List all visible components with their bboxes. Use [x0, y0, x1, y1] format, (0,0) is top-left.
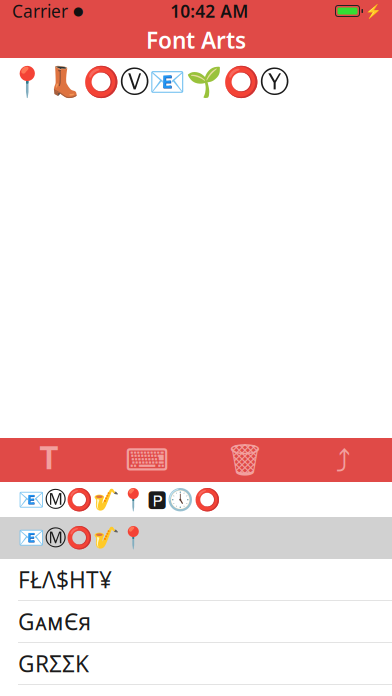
staticText: ⌨ [125, 443, 169, 477]
staticText: Carrier [12, 0, 68, 22]
staticText: GᴀᴍЄя [18, 606, 91, 636]
staticText: 📧Ⓜ⭕🎷📍🅿🕔⭕ [18, 486, 221, 513]
staticText: Font Arts [146, 25, 246, 55]
button[interactable]: Share [294, 438, 392, 482]
button[interactable]: 📧Ⓜ⭕🎷📍🅿🕔⭕ [0, 482, 392, 517]
button[interactable]: Clear [196, 438, 294, 482]
button[interactable]: FŁΛ$HТ¥ [0, 559, 392, 601]
staticText: 📍👢⭕Ⓥ📧🌱⭕Ⓨ [9, 64, 289, 100]
staticText: ⚡ [365, 3, 382, 19]
staticText: 📧Ⓜ⭕🎷📍 [18, 525, 147, 551]
button[interactable]: GRΣΣK [0, 643, 392, 685]
button[interactable]: Keyboard [98, 438, 196, 482]
staticText: FŁΛ$HТ¥ [18, 564, 112, 594]
button[interactable]: Fonts [0, 438, 98, 482]
staticText: 🗑 [225, 442, 264, 477]
button[interactable]: GᴀᴍЄя [0, 601, 392, 643]
staticText: 𝐓 [39, 445, 59, 475]
staticText: GRΣΣK [18, 648, 89, 678]
button[interactable]: 📧Ⓜ⭕🎷📍 [0, 517, 392, 559]
staticText: 10:42 AM [170, 0, 248, 22]
staticText: ⤴ [335, 445, 350, 475]
staticText: ● [73, 4, 83, 18]
